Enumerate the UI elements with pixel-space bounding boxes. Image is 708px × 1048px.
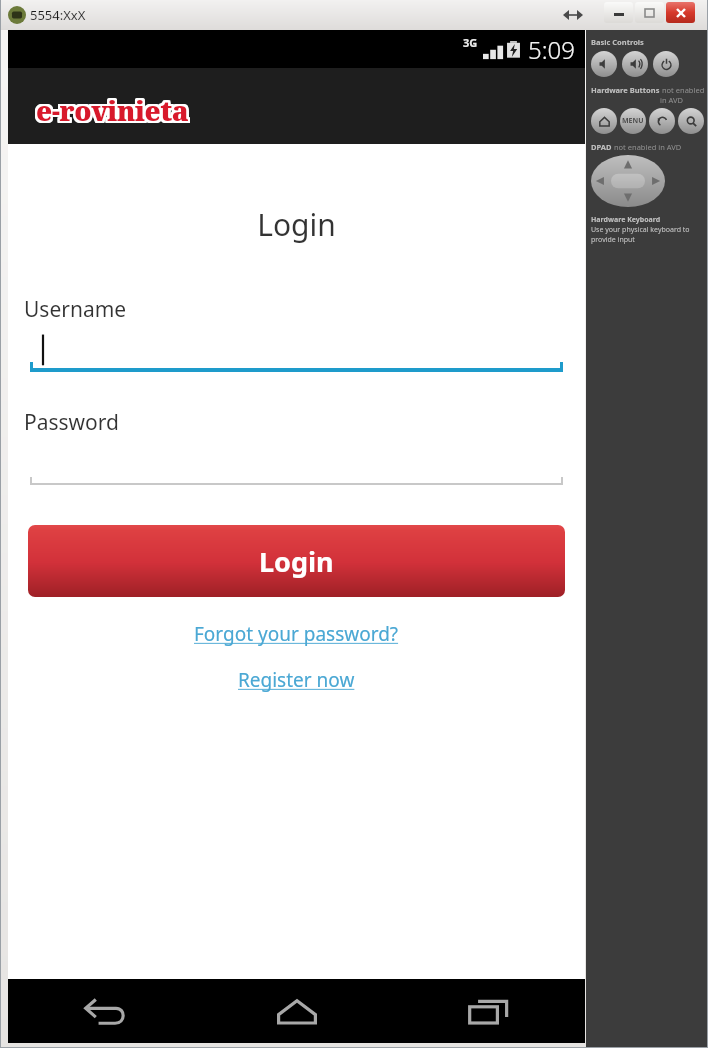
button[interactable]: Home <box>201 979 393 1043</box>
staticText: e-rovinieta <box>37 92 190 129</box>
staticText: e-rovinieta <box>38 91 191 128</box>
button[interactable]: Power <box>653 51 679 77</box>
button[interactable] <box>30 437 563 485</box>
button[interactable]: D-pad <box>591 155 665 207</box>
button[interactable]: Close <box>666 2 695 23</box>
staticText: e-rovinieta <box>34 92 187 129</box>
staticText: e-rovinieta <box>36 92 189 129</box>
button[interactable]: Forgot your password? <box>8 615 585 653</box>
staticText: Username <box>24 295 127 324</box>
staticText: not enabled in AVD <box>612 142 682 152</box>
button[interactable]: Search <box>678 108 704 134</box>
button[interactable]: Menu <box>620 108 646 134</box>
staticText: e-rovinieta <box>34 90 187 127</box>
staticText: e-rovinieta <box>35 94 188 131</box>
staticText: e-rovinieta <box>38 92 191 129</box>
staticText: e-rovinieta <box>36 91 189 128</box>
staticText: e-rovinieta <box>38 94 191 131</box>
staticText: Forgot your password? <box>194 621 399 647</box>
staticText: e-rovinieta <box>34 91 187 128</box>
staticText: Login <box>259 543 334 580</box>
button[interactable]: Volume down <box>591 51 617 77</box>
staticText: 5554:XxX <box>30 6 86 24</box>
button[interactable]: Home <box>591 108 617 134</box>
button[interactable]: Back <box>8 979 201 1043</box>
button[interactable]: Minimize <box>604 2 633 23</box>
staticText: Basic Controls <box>591 37 644 47</box>
staticText: Password <box>24 408 119 437</box>
staticText: e-rovinieta <box>36 90 189 127</box>
staticText: e-rovinieta <box>36 93 189 130</box>
staticText: e-rovinieta <box>35 93 188 130</box>
button[interactable]: Register now <box>8 661 585 699</box>
staticText: e-rovinieta <box>34 93 187 130</box>
staticText: e-rovinieta <box>37 94 190 131</box>
staticText: e-rovinieta <box>37 93 190 130</box>
staticText: 5:09 <box>528 33 575 66</box>
staticText: Login <box>8 204 585 245</box>
staticText: e-rovinieta <box>34 94 187 131</box>
staticText: e-rovinieta <box>38 93 191 130</box>
button[interactable]: Back <box>649 108 675 134</box>
staticText: 3G <box>463 35 478 50</box>
button[interactable]: Recents <box>393 979 585 1043</box>
staticText: e-rovinieta <box>35 92 188 129</box>
staticText: e-rovinieta <box>36 94 189 131</box>
staticText: Hardware Keyboard <box>591 215 661 225</box>
staticText: Use your physical keyboard to provide in… <box>591 225 708 245</box>
button[interactable]: Resize <box>556 3 590 27</box>
staticText: e-rovinieta <box>38 90 191 127</box>
staticText: e-rovinieta <box>37 91 190 128</box>
staticText: e-rovinieta <box>35 91 188 128</box>
button[interactable] <box>30 324 563 372</box>
staticText: Register now <box>238 667 355 693</box>
button[interactable]: Login <box>28 525 565 597</box>
staticText: MENU <box>622 116 644 126</box>
staticText: e-rovinieta <box>37 90 190 127</box>
staticText: e-rovinieta <box>35 90 188 127</box>
staticText: not enabled in AVD <box>660 85 708 105</box>
button[interactable]: Volume up <box>622 51 648 77</box>
staticText: DPAD <box>591 142 612 152</box>
staticText: Hardware Buttons <box>591 85 660 95</box>
button[interactable]: Maximize <box>635 2 664 23</box>
